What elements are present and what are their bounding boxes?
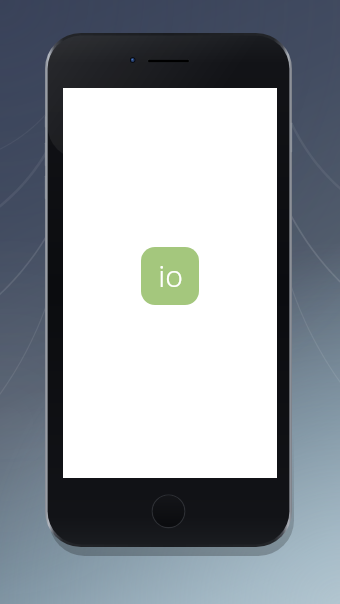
staticText: io — [158, 255, 183, 296]
button[interactable]: io app logo — [141, 247, 199, 305]
